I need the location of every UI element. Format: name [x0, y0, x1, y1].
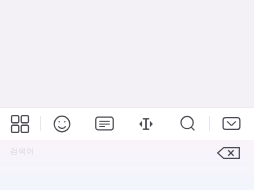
other: Move cursor: [136, 114, 156, 134]
button[interactable]: Keyboard modes: [0, 107, 40, 140]
other: Emoji: [53, 115, 71, 133]
button[interactable]: Clipboard: [83, 107, 125, 140]
button[interactable]: Search: [167, 107, 209, 140]
other: Search: [179, 115, 197, 133]
other: Hide keyboard: [222, 114, 241, 133]
button[interactable]: Hide keyboard: [210, 107, 252, 140]
button[interactable]: Move cursor: [125, 107, 167, 140]
other: Keyboard modes: [11, 115, 29, 133]
staticText: 검색어: [10, 146, 34, 156]
button[interactable]: Emoji: [41, 107, 83, 140]
button[interactable]: Backspace: [212, 142, 246, 164]
other: Clipboard: [95, 114, 114, 133]
